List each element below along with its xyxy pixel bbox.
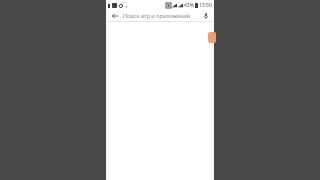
staticText: 43%	[184, 2, 194, 9]
button[interactable]	[208, 32, 216, 43]
button[interactable]: Back	[110, 11, 119, 20]
button[interactable]: Voice search	[201, 11, 210, 20]
staticText: 13:50	[199, 2, 212, 9]
staticText: Поиск игр и приложений	[123, 12, 191, 19]
button[interactable]: Поиск игр и приложений	[123, 10, 199, 21]
